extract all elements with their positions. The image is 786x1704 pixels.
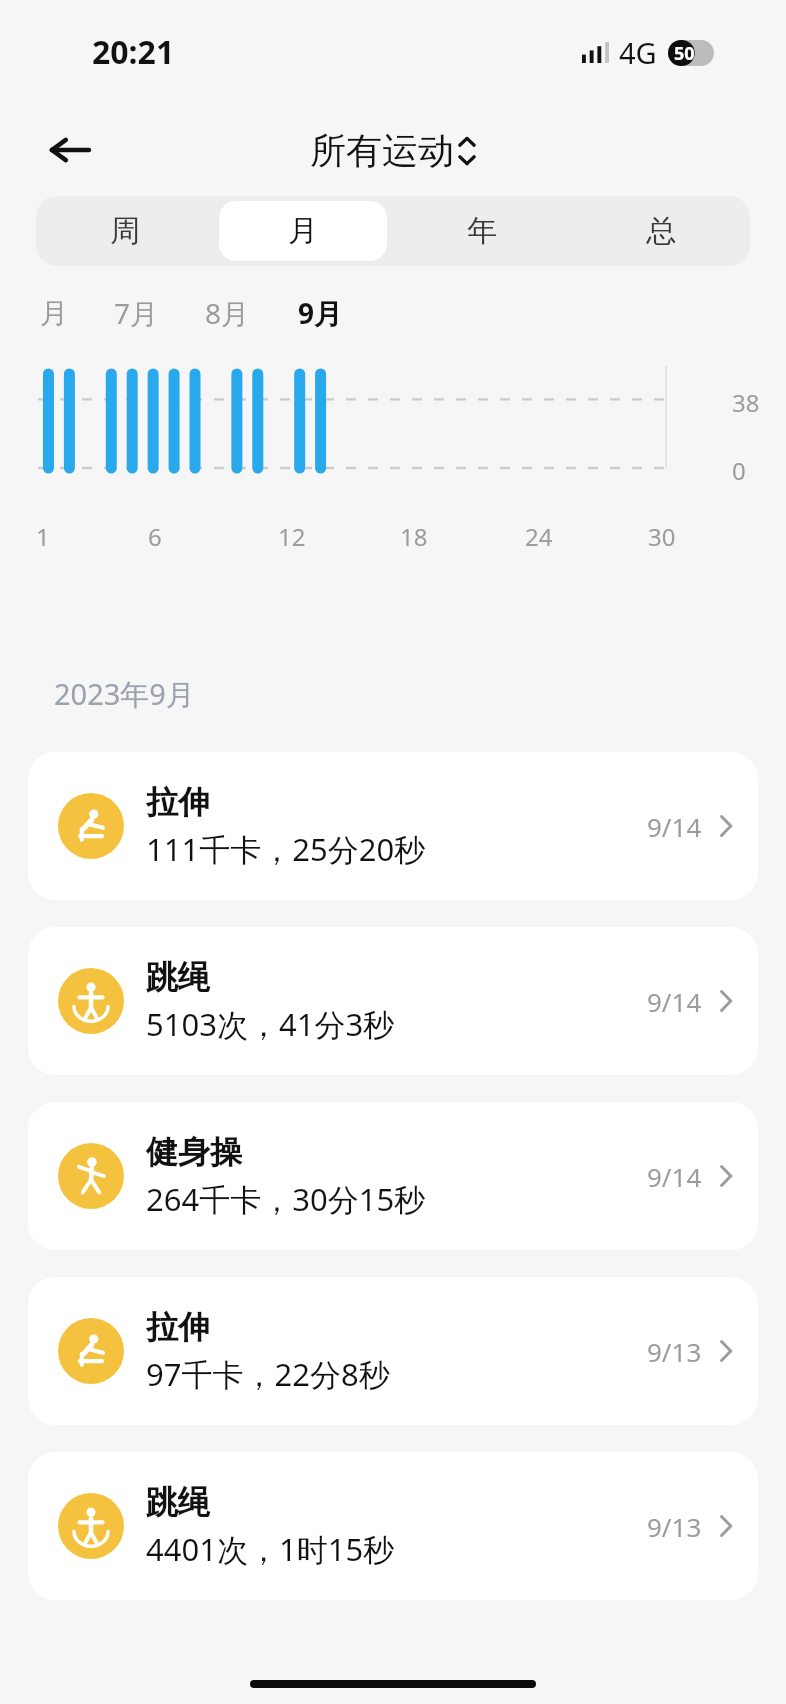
staticText: 拉伸 bbox=[146, 1307, 210, 1347]
staticText: 4G bbox=[619, 33, 657, 72]
staticText: 9/14 bbox=[647, 1159, 702, 1194]
staticText: 1 bbox=[36, 520, 50, 553]
staticText: 24 bbox=[525, 520, 553, 553]
staticText: 7月 bbox=[114, 294, 159, 332]
button[interactable]: 周 bbox=[41, 201, 209, 261]
staticText: 0 bbox=[732, 454, 746, 487]
staticText: 9月 bbox=[298, 294, 343, 332]
staticText: 总 bbox=[646, 212, 676, 250]
button[interactable]: 年 bbox=[397, 201, 566, 261]
staticText: 健身操 bbox=[146, 1132, 242, 1172]
button[interactable]: 跳绳 bbox=[28, 1452, 758, 1600]
staticText: 30 bbox=[648, 520, 676, 553]
staticText: 8月 bbox=[205, 294, 250, 332]
staticText: 9/13 bbox=[647, 1509, 702, 1544]
staticText: 264千卡，30分15秒 bbox=[146, 1178, 426, 1220]
staticText: 9/14 bbox=[647, 809, 702, 844]
staticText: 12 bbox=[278, 520, 306, 553]
button[interactable]: 所有运动 bbox=[310, 128, 477, 173]
staticText: 年 bbox=[467, 212, 497, 250]
staticText: 月 bbox=[40, 296, 68, 331]
staticText: 97千卡，22分8秒 bbox=[146, 1353, 390, 1395]
staticText: 6 bbox=[148, 520, 162, 553]
button[interactable]: 跳绳 bbox=[28, 927, 758, 1075]
staticText: 跳绳 bbox=[146, 957, 210, 997]
button[interactable]: 健身操 bbox=[28, 1102, 758, 1250]
button[interactable]: 拉伸 bbox=[28, 752, 758, 900]
staticText: 20:21 bbox=[92, 30, 175, 74]
staticText: 周 bbox=[110, 212, 140, 250]
button[interactable]: 总 bbox=[576, 201, 745, 261]
staticText: 月 bbox=[288, 212, 318, 250]
button[interactable]: 月 bbox=[219, 201, 387, 261]
staticText: 5103次，41分3秒 bbox=[146, 1003, 395, 1045]
staticText: 2023年9月 bbox=[54, 674, 195, 714]
staticText: 4401次，1时15秒 bbox=[146, 1528, 395, 1570]
button[interactable]: 拉伸 bbox=[28, 1277, 758, 1425]
staticText: 跳绳 bbox=[146, 1482, 210, 1522]
button[interactable]: Back bbox=[36, 116, 104, 184]
staticText: 所有运动 bbox=[310, 128, 454, 173]
staticText: 9/14 bbox=[647, 984, 702, 1019]
staticText: 50 bbox=[674, 41, 695, 66]
staticText: 拉伸 bbox=[146, 782, 210, 822]
staticText: 9/13 bbox=[647, 1334, 702, 1369]
staticText: 111千卡，25分20秒 bbox=[146, 828, 426, 870]
staticText: 38 bbox=[732, 386, 760, 419]
staticText: 18 bbox=[400, 520, 428, 553]
